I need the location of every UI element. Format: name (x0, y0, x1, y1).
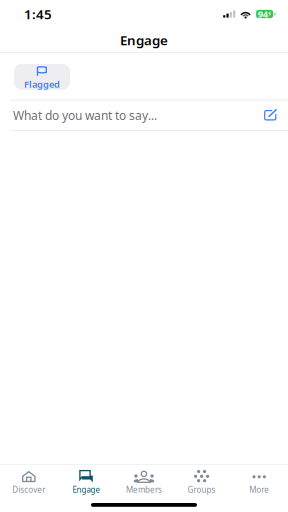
staticText: Groups (188, 484, 216, 495)
staticText: What do you want to say... (13, 107, 157, 123)
staticText: More (249, 484, 269, 495)
staticText: 1:45 (24, 5, 52, 23)
staticText: Discover (12, 484, 45, 495)
staticText: Engage (120, 31, 168, 49)
button[interactable]: Flagged (14, 64, 70, 90)
staticText: Members (126, 484, 162, 495)
button[interactable]: Discover (0, 465, 58, 493)
staticText: 94 (258, 8, 268, 20)
staticText: Engage (72, 484, 100, 495)
button[interactable]: Members (115, 465, 173, 493)
button[interactable]: More (230, 465, 288, 493)
button[interactable]: Groups (173, 465, 230, 493)
staticText: Flagged (24, 78, 60, 90)
button[interactable]: Engage (58, 465, 115, 493)
button[interactable]: What do you want to say... (0, 101, 288, 130)
